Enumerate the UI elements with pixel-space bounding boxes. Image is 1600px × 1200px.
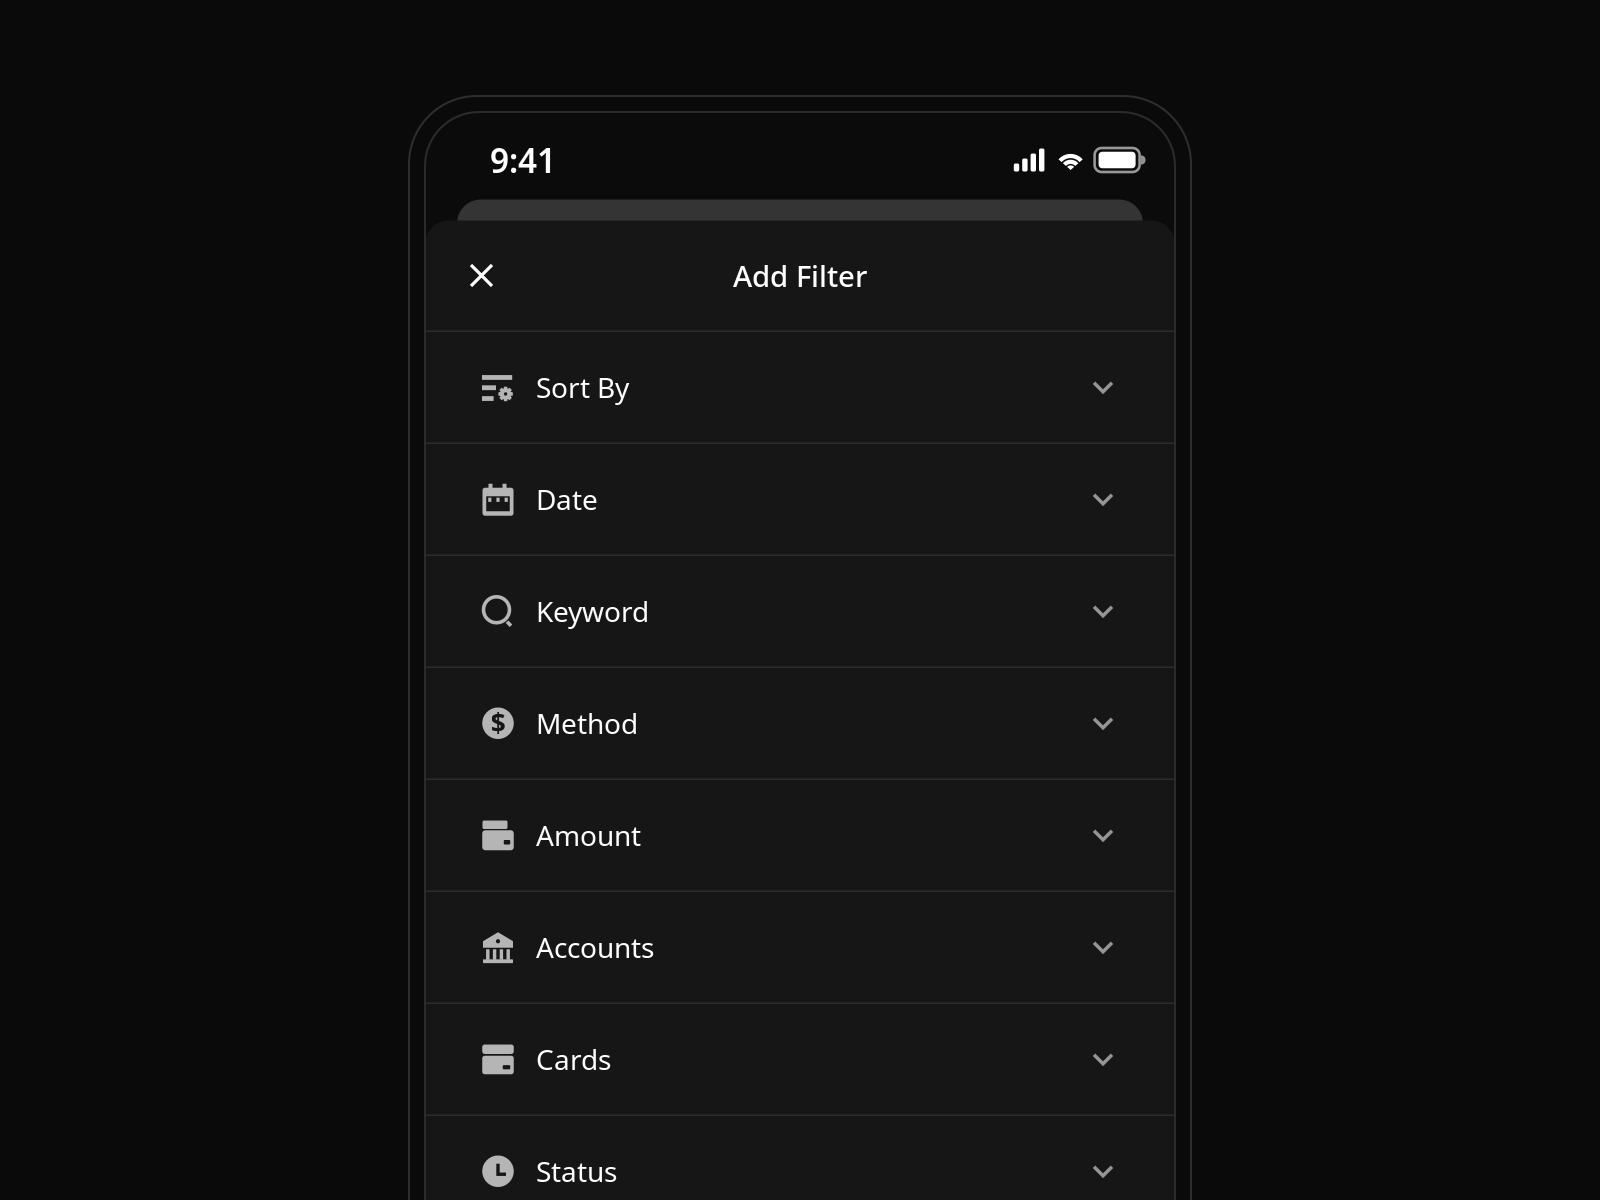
button[interactable]: Date [425,444,1175,554]
staticText: Method [536,705,638,742]
button[interactable]: Sort By [425,332,1175,442]
staticText: Keyword [536,593,649,630]
staticText: 9:41 [490,138,556,182]
staticText: Add Filter [733,256,867,295]
button[interactable]: $ [425,668,1175,778]
button[interactable]: Accounts [425,892,1175,1002]
staticText: $ [490,705,505,740]
staticText: Status [536,1153,617,1190]
button[interactable]: Amount [425,780,1175,890]
button[interactable]: Cards [425,1004,1175,1114]
staticText: Cards [536,1041,611,1078]
staticText: Sort By [536,369,629,406]
staticText: Date [536,481,598,518]
button[interactable]: Close [452,246,511,305]
button[interactable]: Keyword [425,556,1175,666]
staticText: Amount [536,817,641,854]
staticText: Accounts [536,929,654,966]
button[interactable]: Status [425,1116,1175,1200]
